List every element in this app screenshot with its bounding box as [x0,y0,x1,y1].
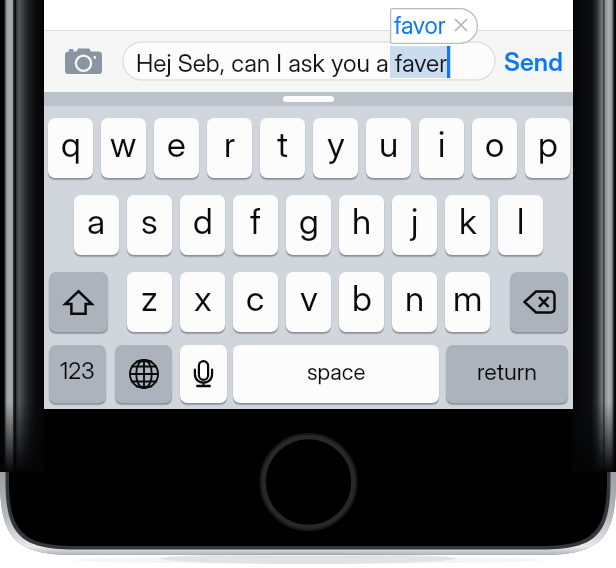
staticText: j [411,200,419,242]
button[interactable]: Camera [59,35,107,87]
button[interactable] [390,8,478,44]
button[interactable]: i [419,118,464,178]
staticText: u [379,123,399,165]
staticText: c [246,277,265,319]
button[interactable]: d [180,195,225,255]
button[interactable]: q [48,118,93,178]
button[interactable] [123,42,495,80]
button[interactable]: w [101,118,146,178]
staticText: i [438,123,446,165]
staticText: q [61,123,81,165]
staticText: Hej Seb, can I ask you a faver [136,48,448,78]
button[interactable]: c [233,272,278,332]
staticText: w [110,123,137,165]
button[interactable]: r [207,118,252,178]
staticText: l [517,200,525,242]
button[interactable]: y [313,118,358,178]
button[interactable]: Switch keyboard [115,345,172,403]
button[interactable]: x [180,272,225,332]
button[interactable]: e [154,118,199,178]
button[interactable]: u [366,118,411,178]
staticText: v [300,277,318,319]
staticText: m [453,277,483,319]
staticText: b [352,277,372,319]
button[interactable]: Send [499,41,567,83]
staticText: d [193,200,213,242]
staticText: space [307,358,366,385]
button[interactable]: v [286,272,331,332]
button[interactable]: g [286,195,331,255]
staticText: y [327,123,345,165]
staticText: h [352,200,372,242]
staticText: p [538,123,558,165]
button[interactable]: l [498,195,543,255]
staticText: a [87,200,106,242]
button[interactable]: return [446,345,568,403]
staticText: k [459,200,477,242]
button[interactable]: k [445,195,490,255]
staticText: n [405,277,425,319]
staticText: Send [504,47,563,77]
button[interactable]: o [472,118,517,178]
button[interactable]: t [260,118,305,178]
button[interactable]: p [525,118,570,178]
button[interactable]: Dictate [180,345,227,403]
button[interactable]: n [392,272,437,332]
staticText: o [485,123,505,165]
staticText: s [141,200,158,242]
staticText: r [224,123,236,165]
staticText: e [167,123,186,165]
staticText: return [477,357,537,385]
staticText: g [299,200,319,242]
button[interactable]: a [74,195,119,255]
button[interactable]: Backspace [510,272,568,332]
staticText: f [250,200,261,242]
button[interactable]: Shift [49,272,108,332]
button[interactable]: m [445,272,490,332]
button[interactable]: f [233,195,278,255]
staticText: t [277,123,288,165]
staticText: 123 [60,357,95,385]
button[interactable]: 123 [49,345,106,403]
staticText: x [194,277,212,319]
button[interactable]: j [392,195,437,255]
staticText: favor [394,11,446,40]
button[interactable]: s [127,195,172,255]
button[interactable]: space [233,345,439,403]
button[interactable]: h [339,195,384,255]
button[interactable]: b [339,272,384,332]
staticText: z [141,277,158,319]
button[interactable]: z [127,272,172,332]
